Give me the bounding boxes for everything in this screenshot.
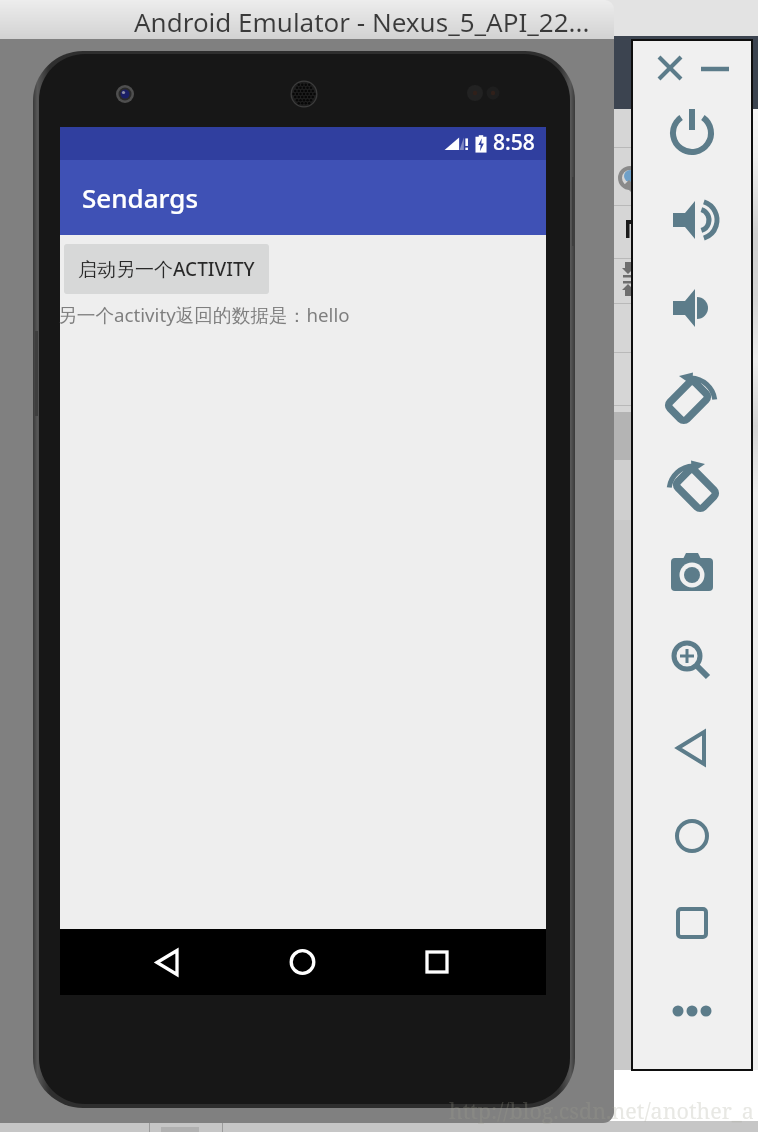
staticText: Sendargs [82, 180, 199, 215]
staticText: 8:58 [493, 128, 535, 157]
staticText: 另一个activity返回的数据是：hello [58, 302, 350, 328]
staticText: Android Emulator - Nexus_5_API_22... [134, 4, 590, 39]
button[interactable]: 启动另一个ACTIVITY [64, 244, 269, 294]
staticText: 启动另一个ACTIVITY [78, 256, 255, 282]
staticText: http://blog.csdn.net/another_a [449, 1096, 754, 1125]
